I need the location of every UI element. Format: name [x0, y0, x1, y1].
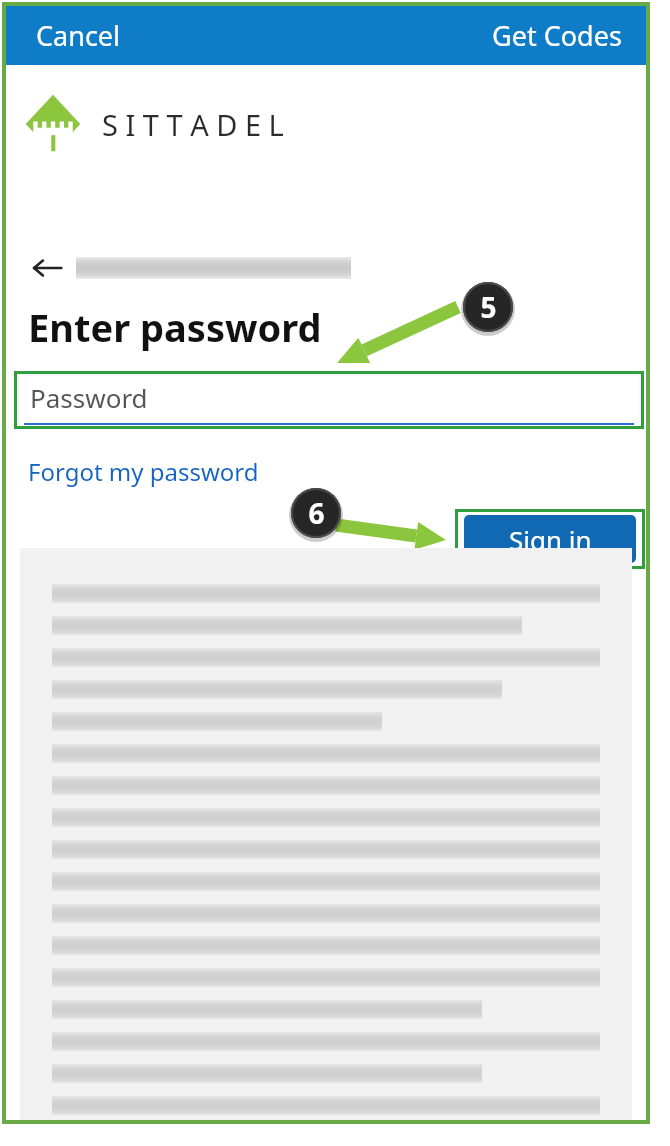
staticText: S I T T A D E L — [102, 105, 284, 144]
staticText: Forgot my password — [28, 455, 259, 488]
staticText: Get Codes — [492, 17, 622, 54]
button[interactable]: Sign in — [464, 515, 636, 563]
staticText: 5 — [480, 288, 497, 326]
staticText: Password — [30, 380, 148, 415]
staticText: Enter password — [28, 301, 322, 353]
button[interactable]: Forgot my password — [20, 451, 267, 492]
button[interactable]: Get Codes — [468, 9, 646, 62]
button[interactable]: Back — [30, 251, 64, 285]
staticText: Cancel — [36, 17, 121, 54]
button[interactable]: Password — [14, 371, 644, 429]
staticText: 6 — [308, 494, 325, 532]
staticText: Sign in — [509, 522, 592, 557]
button[interactable]: Cancel — [6, 9, 151, 62]
